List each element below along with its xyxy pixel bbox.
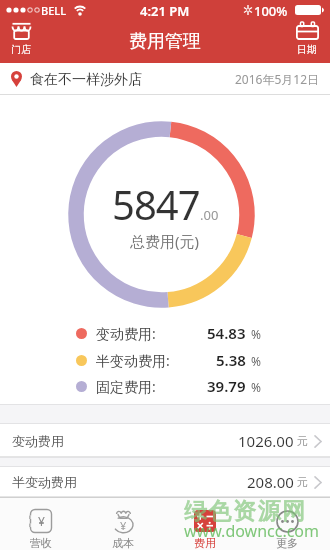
staticText: 更多 [276, 536, 298, 550]
staticText: 100% [254, 2, 288, 20]
button[interactable]: 门店 [8, 22, 34, 53]
staticText: 半变动费用 [12, 474, 77, 490]
staticText: www.downcc.com [184, 520, 320, 542]
staticText: 费用管理 [129, 30, 201, 53]
button[interactable]: 费用 [164, 497, 246, 550]
staticText: .00 [200, 206, 219, 224]
staticText: 食在不一样涉外店 [30, 71, 142, 89]
staticText: % [251, 326, 261, 342]
staticText: 成本 [112, 536, 134, 550]
staticText: 2016年5月12日 [235, 71, 320, 87]
staticText: 元 [297, 475, 308, 489]
staticText: 变动费用 [12, 433, 64, 449]
button[interactable]: 半变动费用 [0, 467, 330, 497]
staticText: ¥ [38, 513, 45, 529]
button[interactable]: 日期 [294, 22, 320, 53]
button[interactable]: 食在不一样涉外店 [0, 63, 330, 95]
staticText: BELL [41, 3, 67, 18]
staticText: 半变动费用: [96, 351, 170, 370]
staticText: 总费用(元) [130, 231, 200, 251]
staticText: 39.79 [207, 376, 246, 396]
staticText: 变动费用: [96, 324, 156, 343]
staticText: % [251, 353, 261, 369]
staticText: 绿色资源网 [184, 497, 307, 526]
staticText: 5847 [112, 177, 200, 231]
staticText: 元 [297, 434, 308, 448]
staticText: 日期 [297, 43, 317, 56]
staticText: 营收 [30, 536, 52, 550]
staticText: 4:21 PM [140, 2, 190, 20]
staticText: 5.38 [216, 350, 246, 370]
staticText: % [251, 379, 261, 395]
staticText: ¥ [120, 518, 127, 533]
staticText: 54.83 [207, 323, 246, 343]
staticText: 208.00 [247, 472, 294, 492]
staticText: 固定费用: [96, 377, 156, 396]
staticText: 门店 [11, 43, 31, 56]
button[interactable]: 更多 [246, 497, 328, 550]
staticText: 费用 [194, 536, 216, 550]
button[interactable]: ¥ [82, 497, 164, 550]
button[interactable]: ¥ [0, 497, 82, 550]
staticText: 1026.00 [238, 431, 294, 451]
button[interactable]: 变动费用 [0, 424, 330, 457]
